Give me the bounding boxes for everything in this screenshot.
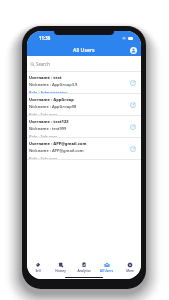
staticText: All Users [73, 46, 95, 53]
staticText: 11:36 [39, 35, 51, 41]
button[interactable]: Edit AppGroup [130, 102, 136, 108]
staticText: Nickname : AppGroup98 [29, 104, 77, 109]
staticText: Username : test123 [29, 119, 69, 124]
button[interactable]: Sell [27, 256, 49, 276]
button[interactable]: Username : APP@gmail.com [27, 138, 141, 160]
staticText: Analytics [77, 269, 91, 273]
staticText: Nickname : test999 [29, 126, 67, 131]
staticText: Nickname : APP@gmail.com [29, 148, 84, 153]
staticText: Username : test [29, 75, 62, 80]
staticText: Username : AppGroup [29, 97, 74, 102]
staticText: Sell [35, 269, 41, 273]
staticText: Role : Administrator [29, 90, 68, 95]
button[interactable]: Account [128, 45, 138, 55]
button[interactable]: Analytics [72, 256, 95, 276]
button[interactable]: Edit test123 [130, 124, 136, 130]
button[interactable]: Username : AppGroup [27, 94, 141, 116]
staticText: History [55, 269, 66, 273]
staticText: More [126, 269, 134, 273]
staticText: Role : Sub user [29, 134, 58, 139]
button[interactable]: More [118, 256, 141, 276]
staticText: Role : Sub user [29, 156, 58, 161]
staticText: Nickname : AppGroup3.9 [29, 82, 78, 87]
button[interactable]: History [49, 256, 72, 276]
staticText: Role : Sub user [29, 112, 58, 117]
button[interactable]: Edit test [130, 80, 136, 86]
staticText: All Users [100, 269, 113, 273]
button[interactable]: Username : test [27, 72, 141, 94]
staticText: Search [36, 61, 50, 67]
button[interactable]: Edit APP@gmail.com [130, 146, 136, 152]
button[interactable]: Username : test123 [27, 116, 141, 138]
button[interactable]: All Users [95, 256, 118, 276]
staticText: Username : APP@gmail.com [29, 141, 87, 146]
